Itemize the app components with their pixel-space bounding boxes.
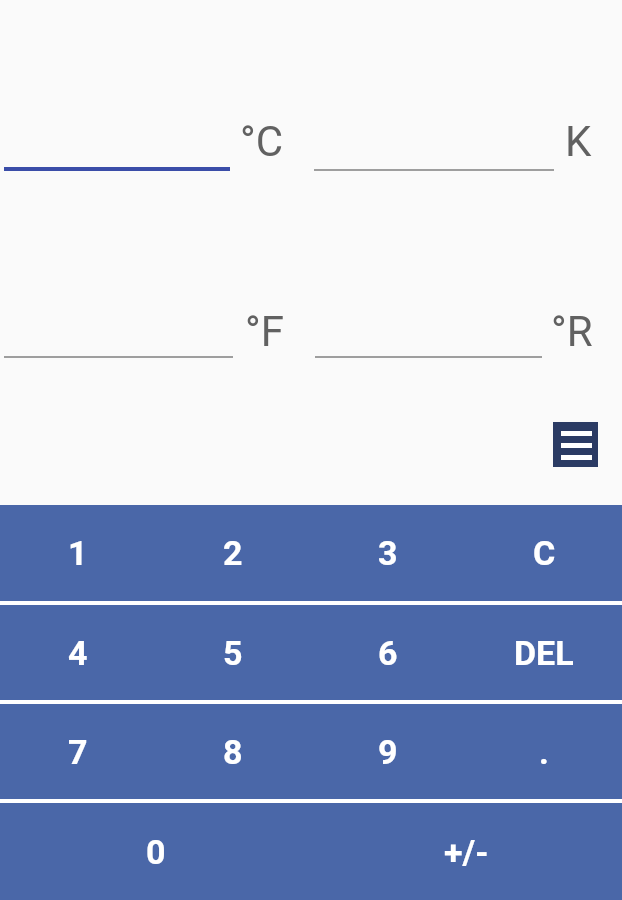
staticText: °C <box>240 117 284 166</box>
button[interactable]: C <box>466 505 622 601</box>
staticText: 5 <box>223 633 243 673</box>
staticText: 1 <box>68 533 88 573</box>
button[interactable]: 6 <box>310 605 466 700</box>
staticText: 4 <box>68 633 88 673</box>
button[interactable] <box>4 120 230 171</box>
button[interactable]: +/- <box>311 803 622 900</box>
staticText: +/- <box>444 832 489 872</box>
button[interactable]: 8 <box>155 704 310 799</box>
button[interactable] <box>4 308 233 358</box>
staticText: °R <box>551 307 593 356</box>
staticText: C <box>533 533 556 573</box>
button[interactable]: 3 <box>310 505 466 601</box>
staticText: 3 <box>378 533 398 573</box>
staticText: 0 <box>146 832 166 872</box>
button[interactable]: 4 <box>0 605 155 700</box>
button[interactable]: 2 <box>155 505 310 601</box>
button[interactable] <box>553 422 598 467</box>
button[interactable]: 9 <box>310 704 466 799</box>
staticText: K <box>565 117 592 166</box>
staticText: °F <box>245 307 284 356</box>
staticText: 9 <box>378 732 398 772</box>
staticText: . <box>539 732 549 772</box>
staticText: 7 <box>68 732 88 772</box>
staticText: DEL <box>514 633 574 673</box>
button[interactable] <box>314 120 554 171</box>
button[interactable]: 7 <box>0 704 155 799</box>
button[interactable]: 0 <box>0 803 311 900</box>
staticText: 8 <box>223 732 243 772</box>
button[interactable]: 1 <box>0 505 155 601</box>
button[interactable] <box>315 308 542 358</box>
staticText: 2 <box>223 533 243 573</box>
staticText: 6 <box>378 633 398 673</box>
button[interactable]: DEL <box>466 605 622 700</box>
button[interactable]: 5 <box>155 605 310 700</box>
button[interactable]: . <box>466 704 622 799</box>
